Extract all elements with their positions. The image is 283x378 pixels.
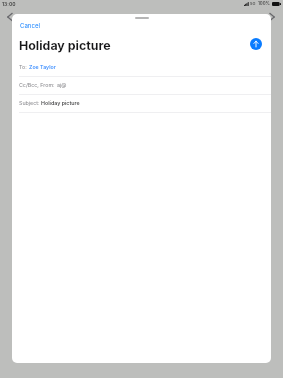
button[interactable]: Cc/Bcc, From:: [12, 76, 271, 93]
staticText: To:: [19, 64, 29, 70]
button[interactable]: Send: [250, 38, 262, 50]
staticText: Zoe Taylor: [29, 64, 56, 70]
staticText: Holiday picture: [19, 38, 111, 53]
button[interactable]: Forward: [267, 12, 277, 22]
button[interactable]: Subject:: [12, 94, 271, 111]
staticText: Cancel: [20, 22, 40, 29]
staticText: 5G: [250, 1, 256, 6]
staticText: Subject:: [19, 100, 41, 106]
staticText: 13:00: [2, 1, 16, 7]
staticText: Holiday picture: [41, 100, 80, 106]
staticText: 100%: [258, 1, 270, 6]
button[interactable]: To:: [12, 58, 271, 76]
button[interactable]: Back: [5, 12, 15, 22]
button[interactable]: Cancel: [20, 22, 40, 29]
staticText: aj@: [57, 82, 67, 88]
staticText: Cc/Bcc, From:: [19, 82, 57, 88]
